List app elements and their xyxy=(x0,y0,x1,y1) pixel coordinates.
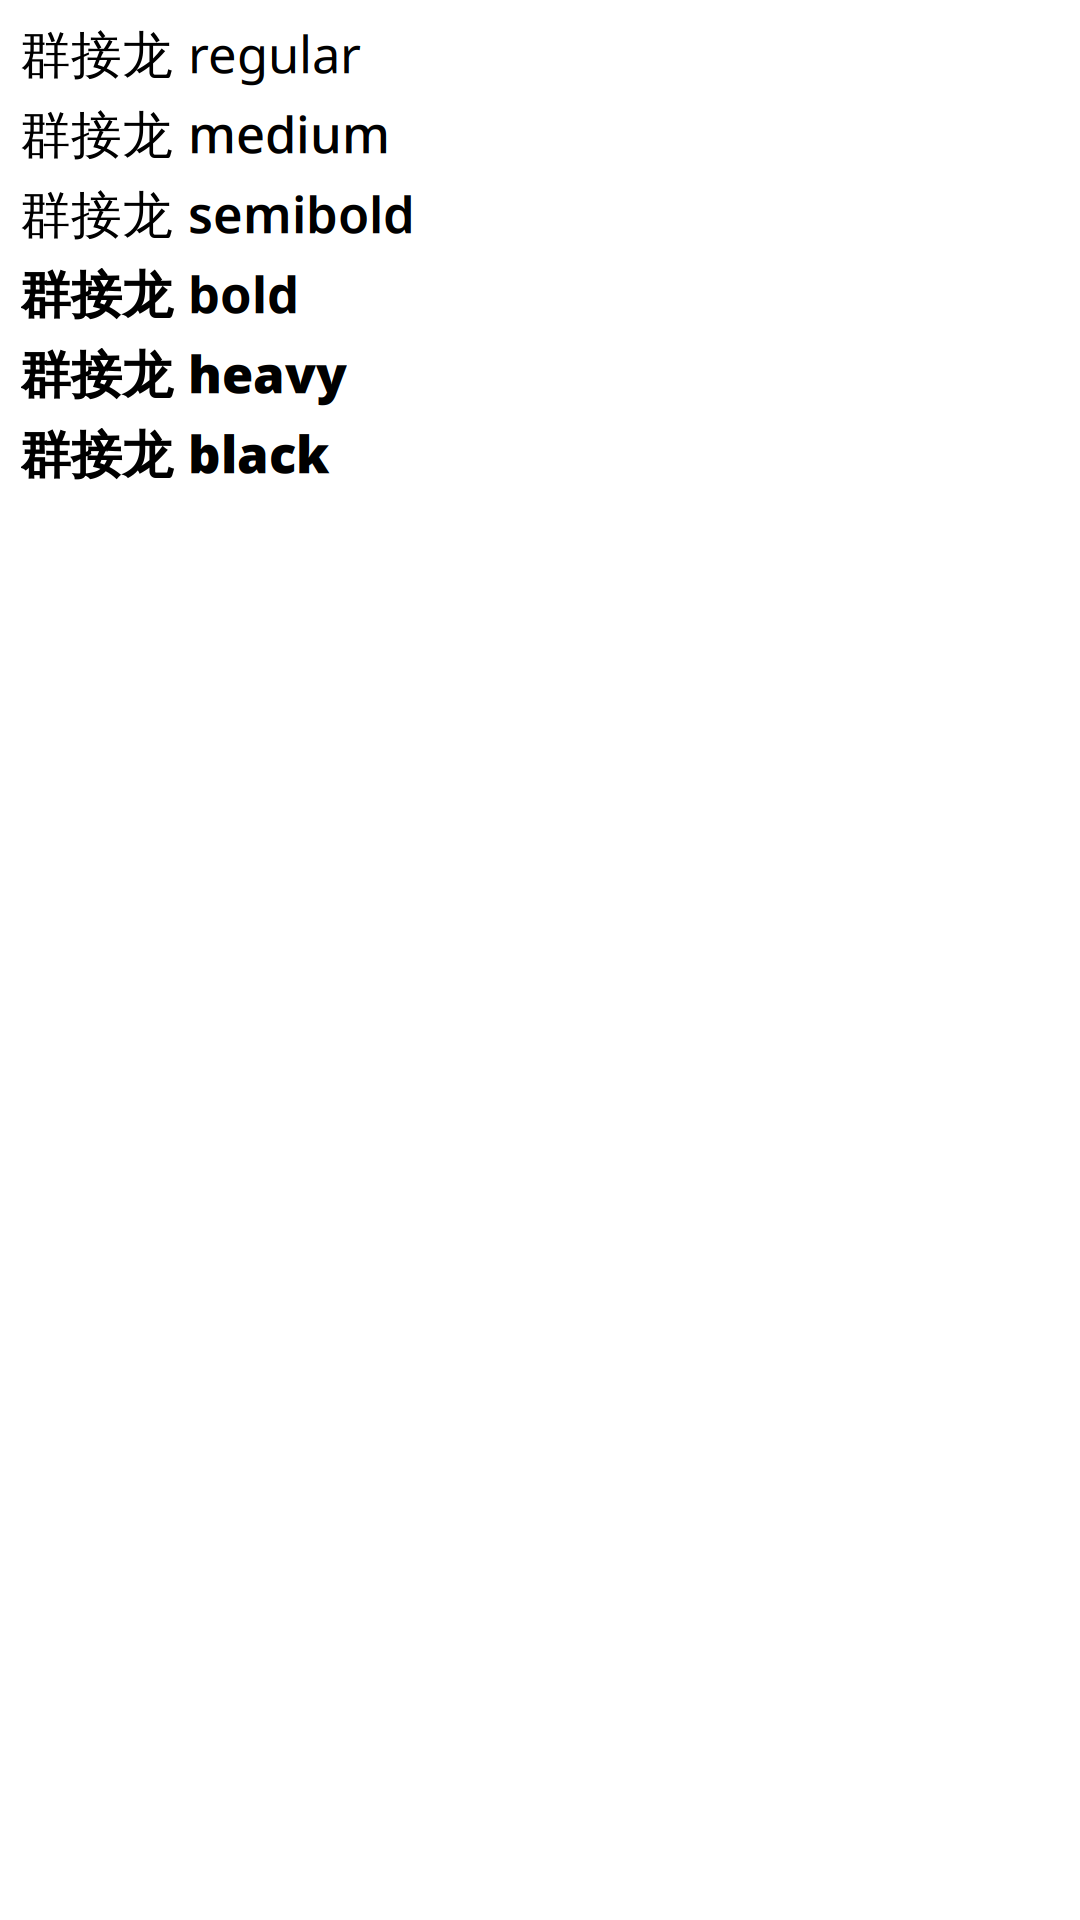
staticText: 群接龙 bold xyxy=(20,260,299,327)
staticText: 群接龙 heavy xyxy=(20,340,347,407)
staticText: 群接龙 semibold xyxy=(20,180,415,247)
staticText: 群接龙 medium xyxy=(20,100,390,167)
staticText: 群接龙 black xyxy=(20,420,329,487)
staticText: 群接龙 regular xyxy=(20,20,361,87)
